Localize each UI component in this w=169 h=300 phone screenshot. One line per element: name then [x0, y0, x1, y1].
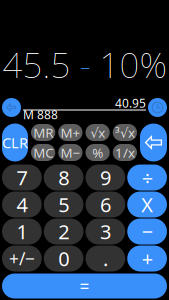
staticText: M 888	[23, 106, 58, 122]
staticText: 8	[58, 164, 69, 191]
staticText: 45.5	[2, 41, 79, 87]
staticText: =	[79, 274, 89, 297]
button[interactable]: 5	[44, 191, 84, 217]
button[interactable]: MR	[31, 124, 55, 141]
staticText: +/−	[9, 247, 35, 270]
button[interactable]: 3	[85, 218, 125, 244]
button[interactable]: ³√x	[113, 124, 137, 141]
button[interactable]: 1	[2, 218, 42, 244]
button[interactable]: 9	[85, 164, 125, 190]
staticText: MC	[33, 144, 53, 161]
button[interactable]: X	[127, 191, 167, 217]
staticText: MR	[33, 124, 53, 141]
staticText: 1	[16, 218, 27, 245]
button[interactable]: 7	[2, 164, 42, 190]
button[interactable]: 8	[44, 164, 84, 190]
button[interactable]: 0	[44, 245, 84, 271]
staticText: -	[79, 41, 99, 87]
staticText: −	[142, 218, 153, 245]
staticText: 9	[100, 164, 111, 191]
staticText: 40.95	[115, 95, 146, 111]
button[interactable]: +/−	[2, 245, 42, 271]
staticText: √x	[90, 124, 105, 141]
button[interactable]: √x	[85, 124, 110, 141]
button[interactable]: 2	[44, 218, 84, 244]
staticText: M−	[60, 144, 80, 161]
staticText: 10%	[99, 41, 166, 87]
button[interactable]: M−	[58, 144, 82, 161]
staticText: 4	[16, 191, 27, 218]
staticText: 5	[58, 191, 69, 218]
button[interactable]: 1/x	[113, 144, 137, 161]
button[interactable]: .	[85, 245, 125, 271]
staticText: 2	[58, 218, 69, 245]
button[interactable]: MC	[31, 144, 55, 161]
button[interactable]: %	[85, 144, 110, 161]
staticText: 1/x	[115, 144, 135, 161]
button[interactable]: ÷	[127, 164, 167, 190]
button[interactable]: Undo	[2, 98, 21, 117]
button[interactable]: M+	[58, 124, 82, 141]
staticText: +	[142, 245, 153, 272]
staticText: .	[103, 245, 108, 272]
staticText: 0	[58, 245, 69, 272]
staticText: X	[141, 191, 153, 218]
staticText: ³√x	[115, 124, 135, 141]
button[interactable]: 4	[2, 191, 42, 217]
staticText: 3	[100, 218, 111, 245]
staticText: ÷	[142, 164, 153, 191]
button[interactable]: Backspace	[140, 123, 167, 161]
staticText: 6	[100, 191, 111, 218]
button[interactable]: +	[127, 245, 167, 271]
button[interactable]: CLR	[2, 123, 28, 161]
staticText: M+	[60, 124, 80, 141]
button[interactable]: History	[148, 98, 167, 117]
button[interactable]: −	[127, 218, 167, 244]
staticText: CLR	[2, 133, 28, 152]
button[interactable]: =	[2, 273, 167, 298]
button[interactable]: 6	[85, 191, 125, 217]
staticText: 7	[16, 164, 27, 191]
staticText: %	[92, 144, 103, 161]
